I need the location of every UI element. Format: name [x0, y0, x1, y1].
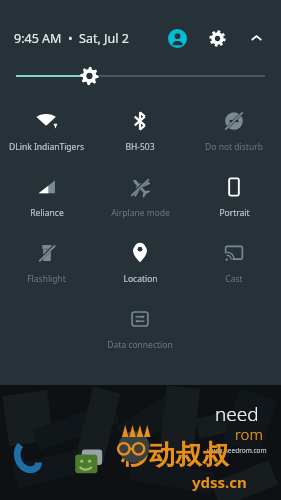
button[interactable]: Do not disturb: [187, 101, 281, 167]
staticText: Airplane mode: [111, 207, 170, 219]
button[interactable]: Messaging: [74, 448, 104, 478]
button[interactable]: Flashlight: [0, 233, 93, 299]
staticText: Reliance: [30, 207, 64, 219]
button[interactable]: BH-503: [93, 101, 187, 167]
staticText: 9:45 AM • Sat, Jul 2: [14, 30, 129, 47]
button[interactable]: Reliance: [0, 167, 93, 233]
button[interactable]: Phone: [12, 440, 46, 474]
staticText: need: [215, 401, 259, 427]
staticText: www.needrom.com: [207, 446, 267, 455]
button[interactable]: Portrait: [187, 167, 281, 233]
button[interactable]: DLink IndianTigers: [0, 101, 93, 167]
staticText: Do not disturb: [205, 141, 263, 153]
staticText: DLink IndianTigers: [9, 141, 84, 153]
button[interactable]: Collapse: [243, 25, 269, 51]
staticText: 移动叔叔: [121, 438, 229, 472]
button[interactable]: Location: [93, 233, 187, 299]
staticText: Data connection: [107, 339, 173, 351]
staticText: ydss.cn: [192, 472, 247, 492]
staticText: Location: [123, 273, 158, 285]
button[interactable]: Cast: [187, 233, 281, 299]
staticText: BH-503: [125, 141, 155, 153]
staticText: Portrait: [219, 207, 250, 219]
button[interactable]: User profile: [164, 25, 190, 51]
button[interactable]: Data connection: [93, 299, 187, 365]
staticText: Cast: [225, 273, 243, 285]
staticText: rom: [235, 424, 263, 444]
button[interactable]: Settings: [204, 25, 230, 51]
button[interactable]: Airplane mode: [93, 167, 187, 233]
button[interactable]: Brightness: [16, 65, 265, 87]
staticText: Flashlight: [27, 273, 66, 285]
